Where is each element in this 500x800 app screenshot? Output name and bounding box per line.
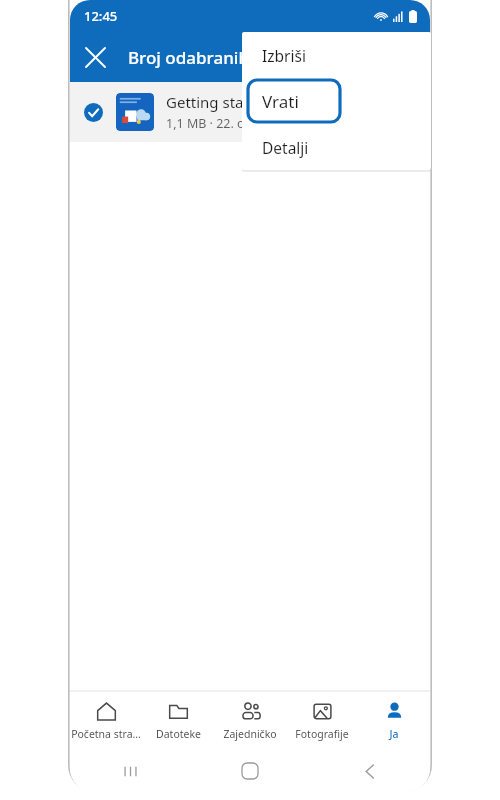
button[interactable]: Home <box>190 750 310 792</box>
button[interactable]: Zajedničko <box>214 692 286 750</box>
staticText: Početna stra… <box>71 727 141 741</box>
button[interactable]: Back <box>310 750 430 792</box>
staticText: Detalji <box>262 137 309 158</box>
staticText: 1,1 MB · 22. ožu… <box>166 115 269 132</box>
staticText: Broj odabranih stavki: 1 <box>128 46 320 69</box>
button[interactable]: Recent apps <box>70 750 190 792</box>
button[interactable]: Close <box>70 32 120 82</box>
button[interactable]: Izbriši <box>242 32 431 78</box>
button[interactable]: Vrati <box>242 78 431 124</box>
staticText: Getting started with O… <box>166 92 334 112</box>
button[interactable]: Ja <box>358 692 430 750</box>
staticText: Ja <box>389 727 399 741</box>
button[interactable]: Getting started with O… <box>70 82 430 142</box>
staticText: 12:45 <box>84 7 118 25</box>
button[interactable]: Fotografije <box>286 692 358 750</box>
button[interactable]: Početna stra… <box>70 692 142 750</box>
staticText: Izbriši <box>262 45 306 66</box>
staticText: Vrati <box>262 90 299 113</box>
staticText: Fotografije <box>295 727 349 741</box>
staticText: Datoteke <box>156 727 201 741</box>
button[interactable]: Detalji <box>242 124 431 170</box>
button[interactable]: Datoteke <box>142 692 214 750</box>
staticText: Zajedničko <box>223 727 277 741</box>
